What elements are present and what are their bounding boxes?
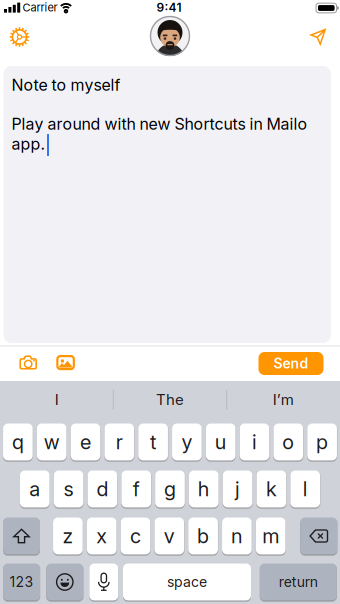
button[interactable]: r	[104, 423, 134, 460]
button[interactable]: Settings	[8, 26, 30, 48]
button[interactable]: I	[2, 381, 111, 417]
button[interactable]: h	[189, 470, 219, 507]
button[interactable]: q	[3, 423, 33, 460]
staticText: y	[181, 430, 192, 454]
button[interactable]: Emoji	[46, 563, 83, 600]
staticText: p	[316, 430, 328, 454]
staticText: q	[12, 430, 24, 454]
button[interactable]: The	[115, 381, 224, 417]
staticText: u	[215, 430, 227, 454]
staticText: Carrier	[22, 1, 57, 14]
button[interactable]: Dictate	[89, 563, 118, 600]
staticText: app.	[11, 135, 44, 153]
button[interactable]: j	[223, 470, 252, 507]
staticText: I’m	[273, 391, 294, 408]
button[interactable]: b	[188, 517, 218, 554]
staticText: 9:41	[156, 0, 181, 15]
button[interactable]: 123	[3, 563, 40, 600]
button[interactable]: Send message	[310, 28, 327, 45]
staticText: l	[303, 477, 308, 501]
button[interactable]: z	[53, 517, 83, 554]
button[interactable]: i	[240, 423, 269, 460]
button[interactable]: Send	[258, 352, 323, 375]
staticText: 123	[10, 574, 34, 590]
button[interactable]: v	[154, 517, 184, 554]
button[interactable]: d	[88, 470, 117, 507]
staticText: Send	[273, 355, 308, 372]
staticText: t	[150, 430, 156, 454]
staticText: b	[197, 524, 209, 548]
button[interactable]: k	[257, 470, 286, 507]
button[interactable]: s	[54, 470, 83, 507]
staticText: x	[96, 524, 107, 548]
staticText: Note to myself	[11, 76, 120, 94]
staticText: f	[133, 477, 140, 501]
button[interactable]: e	[71, 423, 100, 460]
staticText: e	[80, 430, 91, 454]
staticText: w	[44, 430, 60, 454]
button[interactable]: c	[121, 517, 150, 554]
button[interactable]: y	[172, 423, 202, 460]
button[interactable]: w	[37, 423, 67, 460]
button[interactable]: space	[123, 563, 251, 600]
button[interactable]: g	[155, 470, 185, 507]
staticText: g	[164, 477, 176, 501]
button[interactable]: Attach photo from camera	[19, 355, 37, 371]
staticText: i	[252, 430, 257, 454]
button[interactable]: Profile	[150, 16, 190, 56]
staticText: a	[29, 477, 40, 501]
staticText: z	[62, 524, 73, 548]
button[interactable]: n	[222, 517, 252, 554]
button[interactable]: p	[307, 423, 337, 460]
button[interactable]: a	[20, 470, 50, 507]
button[interactable]: Delete	[300, 517, 337, 554]
staticText: v	[164, 524, 175, 548]
button[interactable]: o	[273, 423, 303, 460]
staticText: n	[231, 524, 243, 548]
staticText: return	[279, 574, 318, 590]
staticText: k	[266, 477, 277, 501]
button[interactable]: x	[87, 517, 117, 554]
button[interactable]: return	[260, 563, 337, 600]
button[interactable]: l	[290, 470, 320, 507]
staticText: m	[262, 524, 279, 548]
staticText: r	[116, 430, 123, 454]
button[interactable]: u	[206, 423, 236, 460]
button[interactable]: Attach photo from library	[56, 355, 75, 370]
staticText: The	[156, 391, 184, 408]
button[interactable]: I’m	[229, 381, 338, 417]
button[interactable]: Shift	[3, 517, 40, 554]
staticText: j	[235, 477, 240, 501]
staticText: h	[198, 477, 210, 501]
staticText: s	[64, 477, 74, 501]
staticText: Play around with new Shortcuts in Mailo	[11, 115, 307, 133]
staticText: d	[96, 477, 108, 501]
button[interactable]: f	[121, 470, 151, 507]
button[interactable]: m	[256, 517, 286, 554]
staticText: I	[55, 391, 59, 408]
staticText: c	[130, 524, 141, 548]
staticText: o	[282, 430, 294, 454]
button[interactable]: t	[138, 423, 168, 460]
staticText: space	[167, 574, 207, 590]
